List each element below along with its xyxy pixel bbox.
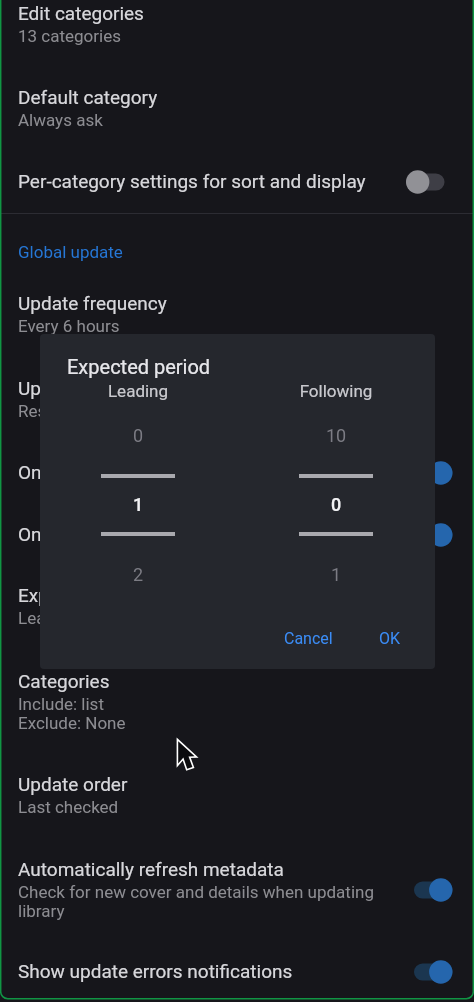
staticText: Every 6 hours [18, 316, 120, 336]
button[interactable]: 10 [281, 425, 391, 446]
staticText: Update restrictions [18, 377, 179, 399]
staticText: Update frequency [18, 292, 167, 314]
staticText: 1 [281, 564, 391, 585]
button[interactable]: Cancel [272, 621, 345, 656]
button[interactable]: 0 [281, 494, 391, 515]
staticText: Automatically refresh metadata [18, 858, 284, 880]
staticText: Default category [18, 86, 158, 108]
staticText: Leading [83, 381, 193, 401]
staticText: 0 [83, 425, 193, 446]
button[interactable]: Automatically refresh metadata [0, 838, 474, 942]
staticText: Only update started manga [18, 523, 247, 545]
staticText: Include: list Exclude: None [18, 694, 126, 733]
button[interactable]: Only update started manga [0, 504, 474, 566]
button[interactable]: Show update errors notifications [0, 941, 474, 1002]
button[interactable]: Edit categories [0, 0, 474, 67]
button[interactable]: 2 [83, 564, 193, 585]
button[interactable]: Toggle on [407, 520, 460, 550]
staticText: 13 categories [18, 26, 121, 46]
button[interactable]: Following [281, 381, 391, 401]
button[interactable]: Toggle on [407, 458, 460, 488]
staticText: Categories [18, 670, 110, 692]
staticText: Global update [18, 242, 123, 262]
staticText: Expected period [18, 584, 154, 606]
staticText: Show update errors notifications [18, 960, 293, 982]
staticText: Edit categories [18, 2, 144, 24]
button[interactable]: Toggle off [399, 167, 452, 197]
staticText: Check for new cover and details when upd… [18, 882, 390, 921]
staticText: 10 [281, 425, 391, 446]
button[interactable]: Only update ongoing manga [0, 442, 474, 504]
staticText: Last checked [18, 797, 119, 817]
staticText: 0 [281, 494, 391, 515]
staticText: OK [379, 629, 401, 648]
staticText: 1 [83, 494, 193, 515]
button[interactable]: Per-category settings for sort and displ… [0, 151, 474, 213]
button[interactable]: OK [367, 621, 413, 656]
button[interactable]: 0 [83, 425, 193, 446]
button[interactable]: Toggle on [407, 957, 460, 987]
button[interactable]: 1 [281, 564, 391, 585]
button[interactable]: Update frequency [0, 273, 474, 357]
staticText: Following [281, 381, 391, 401]
button[interactable]: Global update [18, 242, 123, 262]
button[interactable]: Toggle on [407, 875, 460, 905]
button[interactable]: Update order [0, 754, 474, 838]
staticText: Always ask [18, 110, 103, 130]
staticText: Cancel [284, 629, 333, 648]
staticText: Restrictions [18, 401, 109, 421]
button[interactable]: Leading [83, 381, 193, 401]
button[interactable]: 1 [83, 494, 193, 515]
button[interactable]: Expected period [0, 565, 474, 649]
staticText: 2 [83, 564, 193, 585]
staticText: Update order [18, 773, 128, 795]
staticText: Per-category settings for sort and displ… [18, 170, 366, 192]
button[interactable]: Default category [0, 67, 474, 151]
staticText: Leading: 1, Following: 0 [18, 608, 195, 628]
button[interactable]: Categories [0, 650, 474, 754]
staticText: Only update ongoing manga [18, 461, 255, 483]
button[interactable]: Update restrictions [0, 358, 474, 442]
staticText: Expected period [67, 355, 211, 378]
